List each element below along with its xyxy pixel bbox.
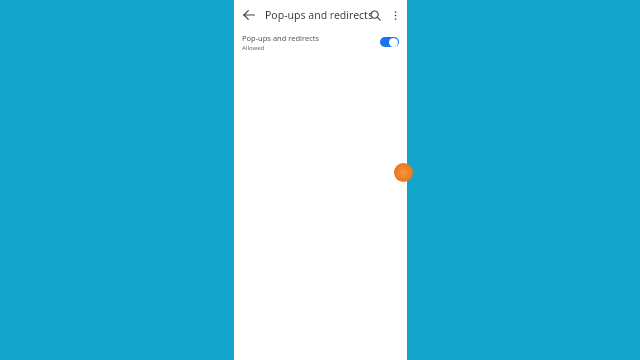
button[interactable]: More options [385, 5, 405, 25]
button[interactable]: Floating action [394, 163, 413, 182]
button[interactable]: Search [365, 5, 385, 25]
staticText: Allowed [242, 44, 265, 52]
button[interactable]: Pop-ups and redirects [234, 29, 407, 55]
button[interactable]: Back [238, 4, 259, 25]
staticText: Pop-ups and redirects [265, 8, 373, 22]
button[interactable]: Pop-ups and redirects toggle [380, 36, 399, 48]
staticText: Pop-ups and redirects [242, 33, 320, 43]
